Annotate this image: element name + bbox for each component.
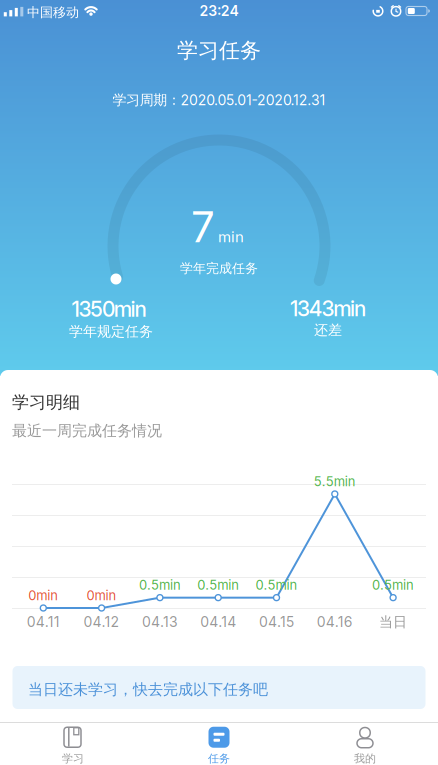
staticText: 当日还未学习，快去完成以下任务吧 — [28, 680, 268, 699]
staticText: 任务 — [208, 752, 230, 765]
staticText: 0.5min — [372, 577, 414, 593]
staticText: 当日 — [379, 613, 407, 631]
staticText: 学习 — [62, 752, 84, 765]
staticText: min — [218, 228, 244, 246]
staticText: 04.11 — [27, 614, 60, 630]
staticText: 23:24 — [200, 3, 238, 19]
staticText: 1343min — [290, 296, 366, 321]
staticText: 0.5min — [197, 577, 239, 593]
staticText: 学习周期：2020.05.01-2020.12.31 — [112, 91, 325, 109]
staticText: 04.14 — [200, 614, 236, 630]
button[interactable]: 任务 — [146, 724, 292, 765]
staticText: 最近一周完成任务情况 — [12, 421, 162, 440]
staticText: 0min — [28, 588, 58, 603]
staticText: 5.5min — [314, 474, 356, 489]
staticText: 中国移动 — [27, 4, 79, 20]
staticText: 1350min — [72, 297, 146, 321]
staticText: 0.5min — [255, 577, 297, 593]
staticText: 还差 — [314, 321, 342, 339]
staticText: 学年完成任务 — [180, 260, 258, 276]
staticText: 0min — [87, 588, 117, 603]
button[interactable]: 我的 — [292, 724, 438, 765]
staticText: 04.16 — [317, 614, 353, 630]
staticText: 学年规定任务 — [69, 323, 153, 340]
staticText: 04.13 — [142, 614, 178, 630]
staticText: 学习明细 — [12, 392, 80, 413]
staticText: 7 — [191, 202, 215, 252]
staticText: 04.15 — [259, 614, 294, 630]
staticText: 0.5min — [139, 577, 181, 593]
staticText: 我的 — [354, 752, 376, 765]
staticText: 学习任务 — [177, 38, 261, 63]
staticText: 04.12 — [84, 614, 120, 630]
button[interactable]: 学习 — [0, 724, 146, 765]
